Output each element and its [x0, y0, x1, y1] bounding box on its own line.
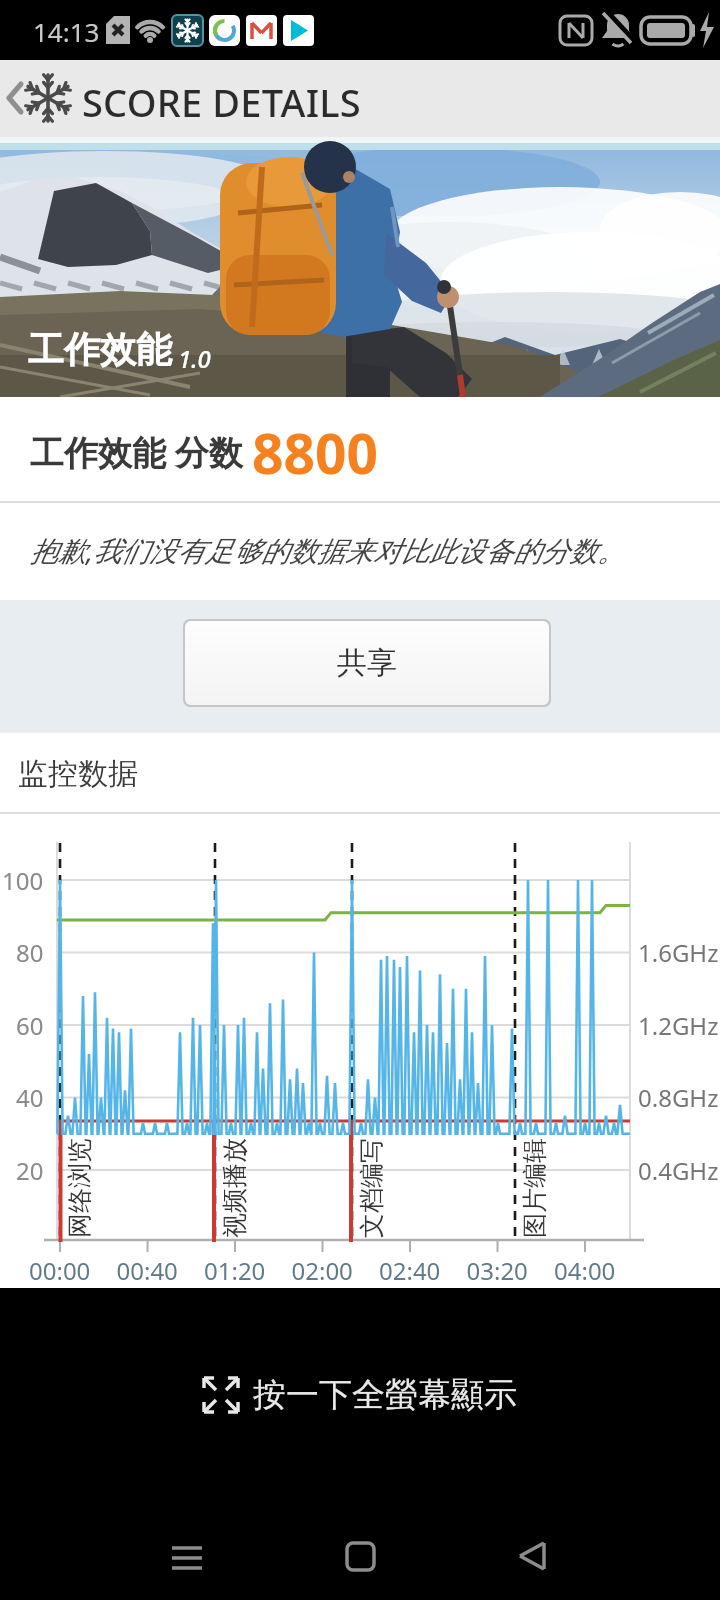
staticText: 抱歉,我们没有足够的数据来对比此设备的分数。 [30, 531, 626, 569]
button[interactable] [0, 60, 76, 137]
staticText: 8800 [252, 415, 378, 490]
staticText: SCORE DETAILS [82, 76, 361, 128]
staticText: 工作效能 [28, 327, 172, 372]
staticText: 1.0 [178, 342, 211, 375]
button[interactable] [160, 1533, 215, 1578]
button[interactable] [508, 1533, 563, 1578]
staticText: 14:13 [33, 14, 100, 49]
staticText: 共享 [337, 644, 397, 682]
staticText: 按一下全螢幕顯示 [253, 1374, 517, 1416]
button[interactable] [333, 1533, 388, 1578]
button[interactable]: 共享 [183, 619, 551, 707]
staticText: 工作效能 分数 [30, 429, 243, 475]
staticText: 监控数据 [18, 755, 138, 793]
button[interactable]: 按一下全螢幕顯示 [0, 1373, 720, 1417]
